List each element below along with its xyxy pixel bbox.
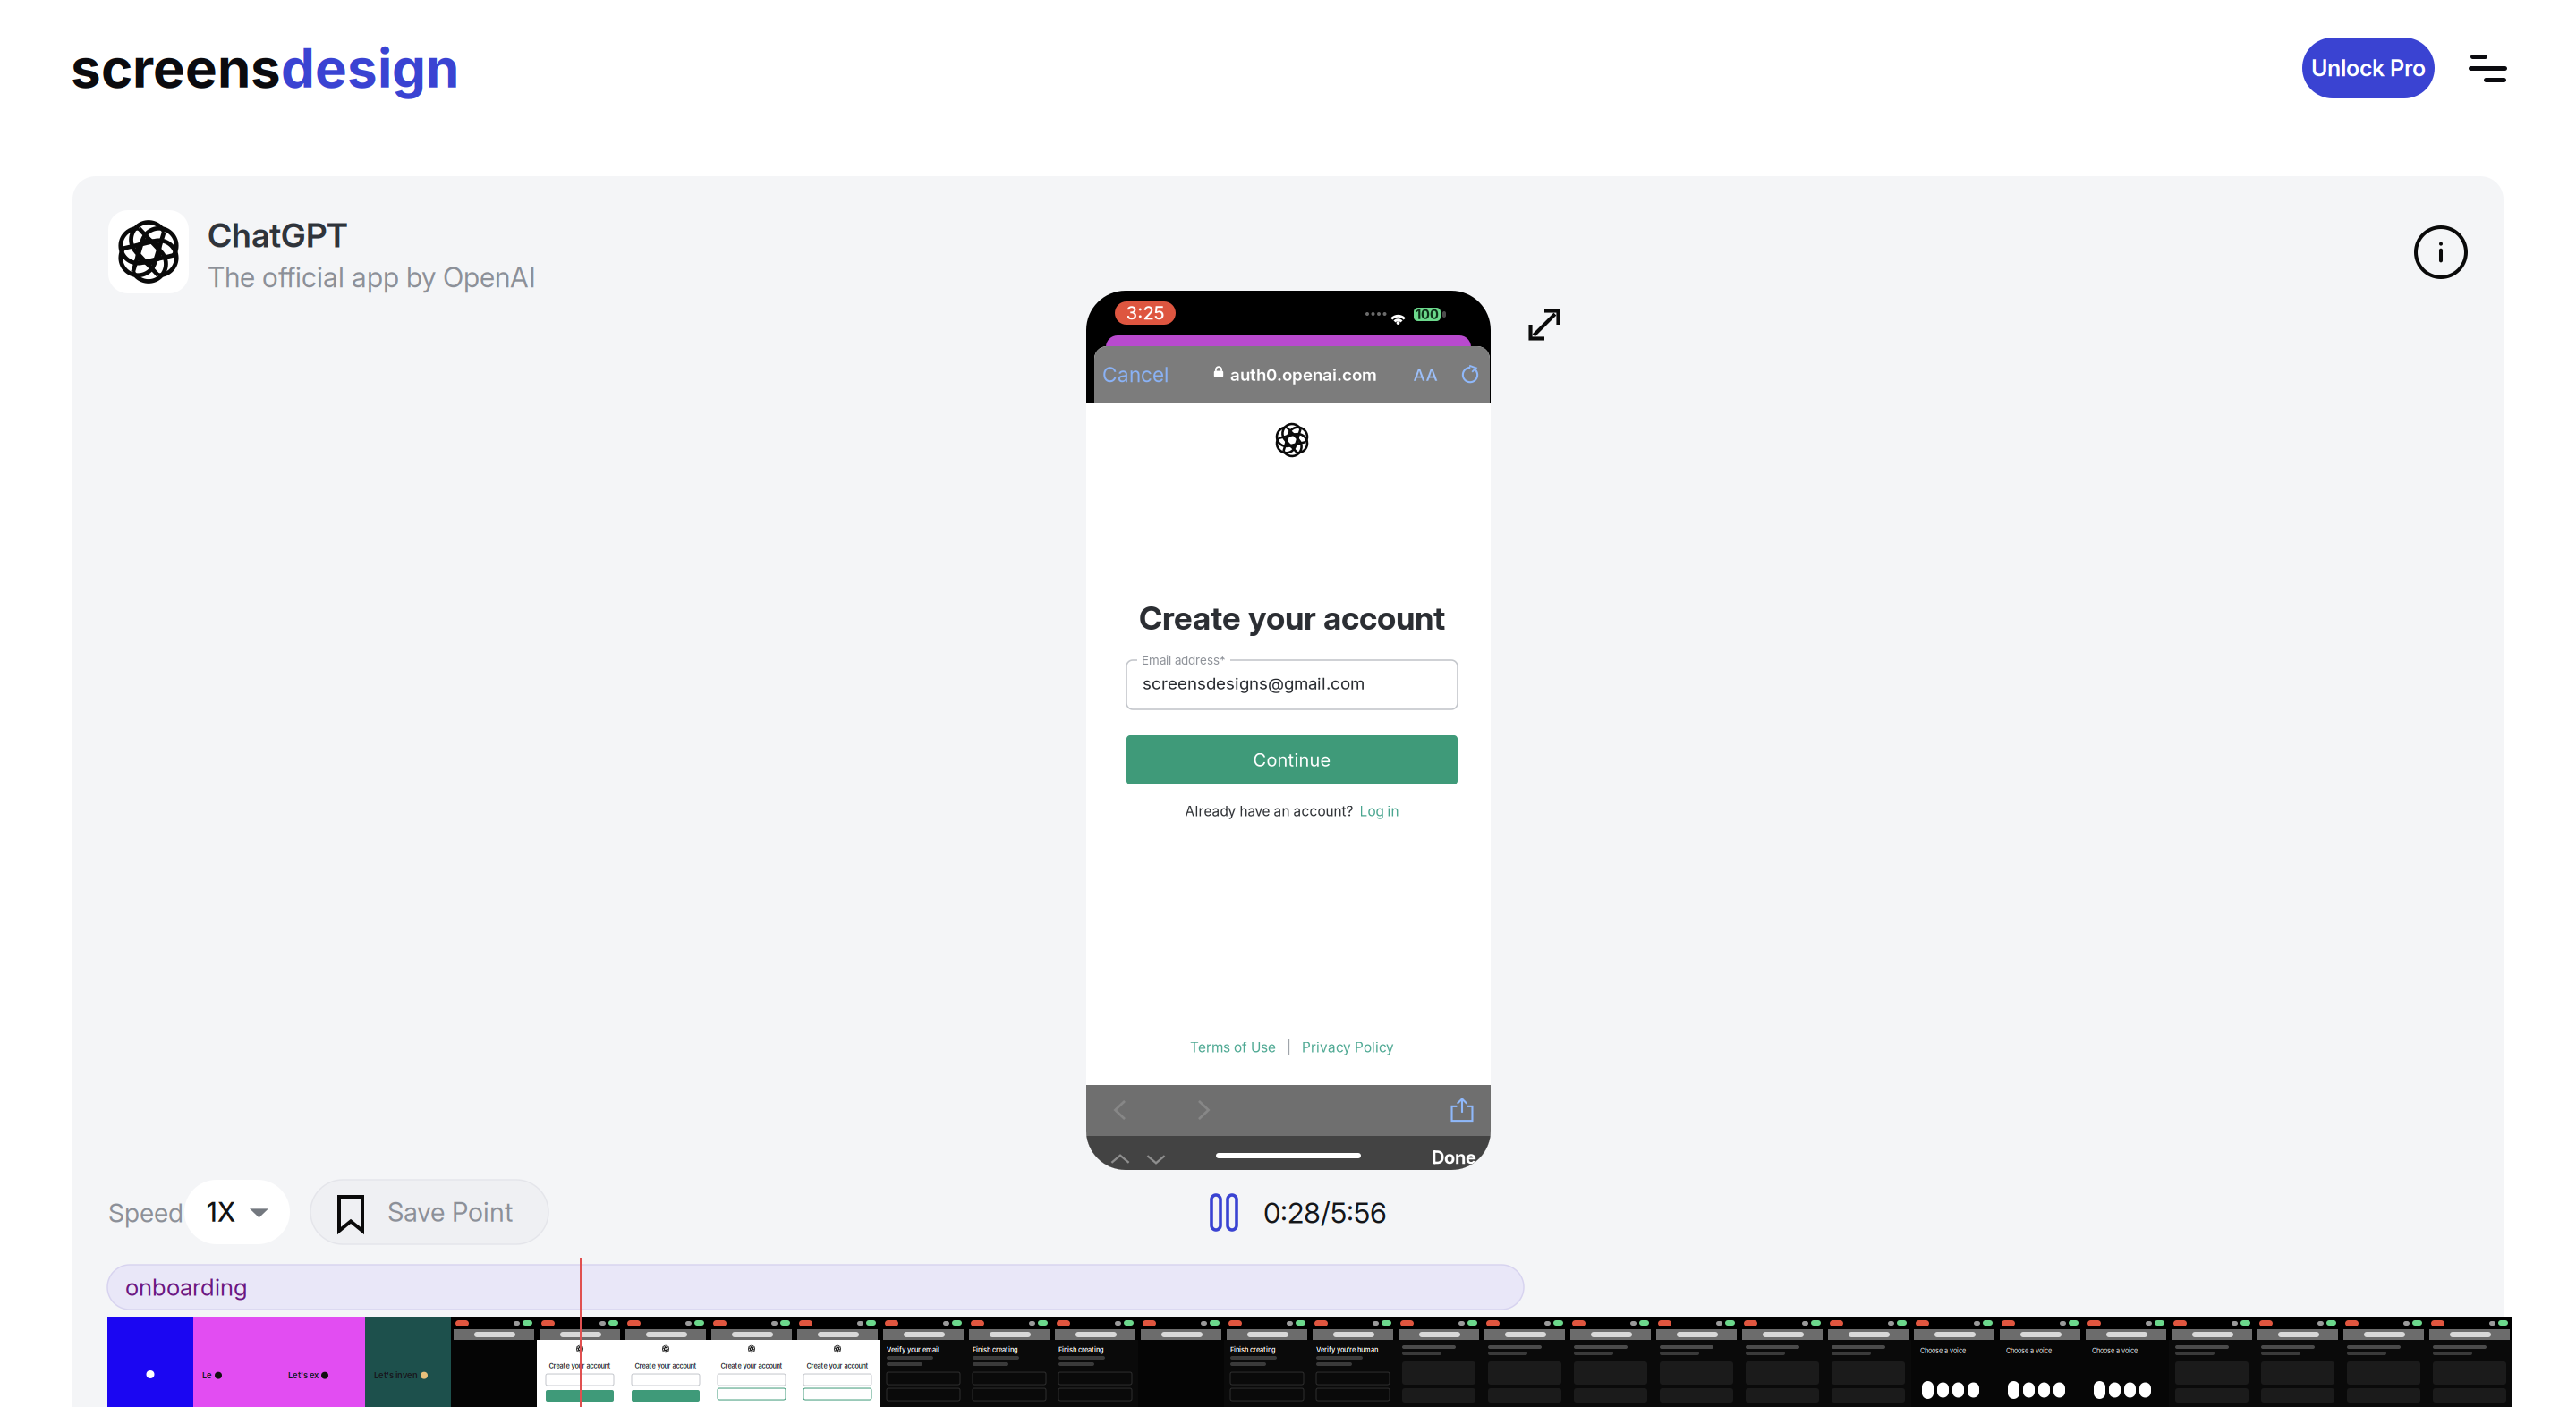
staticText: Finish creating	[1058, 1346, 1104, 1354]
staticText: Create your account	[721, 1362, 782, 1370]
staticText: |	[1287, 1039, 1291, 1056]
staticText: AA	[1413, 365, 1437, 385]
button[interactable]: Forward	[1191, 1098, 1216, 1123]
staticText: design	[281, 36, 459, 100]
staticText: 1X	[207, 1196, 235, 1228]
button[interactable]: onboarding	[107, 1265, 1524, 1310]
staticText: 0:28/5:56	[1263, 1196, 1387, 1230]
staticText: Choose a voice	[1920, 1347, 1966, 1355]
staticText: Create your account	[1139, 599, 1445, 638]
button[interactable]: Continue	[1126, 735, 1458, 784]
button[interactable]: Reload	[1460, 364, 1480, 384]
staticText: Let's ex	[288, 1370, 319, 1380]
staticText: ChatGPT	[208, 215, 348, 255]
button[interactable]: Pause	[1211, 1195, 1237, 1230]
staticText: Email address*	[1142, 653, 1226, 667]
button[interactable]: Done	[1432, 1148, 1489, 1167]
staticText: Choose a voice	[2006, 1347, 2052, 1355]
staticText: Privacy Policy	[1302, 1039, 1394, 1056]
button[interactable]: Terms of Use	[1190, 1039, 1276, 1056]
staticText: Log in	[1360, 803, 1399, 820]
button[interactable]: Log in	[1360, 803, 1399, 820]
staticText: Create your account	[635, 1362, 697, 1370]
staticText: Save Point	[387, 1196, 513, 1228]
staticText: 3:25	[1126, 302, 1165, 324]
button[interactable]: Unlock Pro	[2302, 38, 2435, 98]
button[interactable]: Save Point	[310, 1180, 548, 1244]
button[interactable]: Cancel	[1102, 363, 1174, 386]
staticText: Create your account	[549, 1362, 611, 1370]
staticText: Done	[1432, 1147, 1476, 1168]
staticText: Le	[202, 1370, 212, 1380]
staticText: Verify you're human	[1316, 1346, 1378, 1354]
staticText: onboarding	[125, 1273, 248, 1301]
button[interactable]: Back	[1108, 1098, 1133, 1123]
button[interactable]: Fullscreen	[1528, 309, 1560, 341]
staticText: The official app by OpenAI	[208, 261, 536, 294]
staticText: Verify your email	[887, 1346, 939, 1354]
button[interactable]: App info	[2416, 227, 2466, 277]
staticText: Cancel	[1102, 363, 1169, 387]
button[interactable]: Privacy Policy	[1302, 1039, 1394, 1056]
staticText: screens	[71, 36, 281, 100]
staticText: Let's inven	[374, 1370, 418, 1380]
button[interactable]: Menu	[2469, 55, 2507, 82]
button[interactable]: Next field	[1145, 1148, 1167, 1170]
staticText: Unlock Pro	[2311, 54, 2426, 82]
staticText: 100	[1416, 306, 1439, 322]
staticText: Choose a voice	[2092, 1347, 2138, 1355]
staticText: Already have an account?	[1185, 803, 1353, 820]
button[interactable]: 1X	[184, 1180, 290, 1244]
button[interactable]: Previous field	[1109, 1148, 1131, 1170]
button[interactable]: screens	[71, 39, 625, 97]
staticText: auth0.openai.com	[1230, 365, 1377, 385]
staticText: Finish creating	[973, 1346, 1018, 1354]
staticText: Terms of Use	[1190, 1039, 1276, 1056]
staticText: Speed	[108, 1197, 183, 1228]
staticText: Finish creating	[1230, 1346, 1276, 1354]
staticText: Continue	[1253, 749, 1331, 771]
staticText: Create your account	[807, 1362, 868, 1370]
button[interactable]: Text size	[1415, 365, 1436, 385]
staticText: screensdesigns@gmail.com	[1143, 673, 1365, 693]
button[interactable]: Share	[1450, 1095, 1475, 1124]
